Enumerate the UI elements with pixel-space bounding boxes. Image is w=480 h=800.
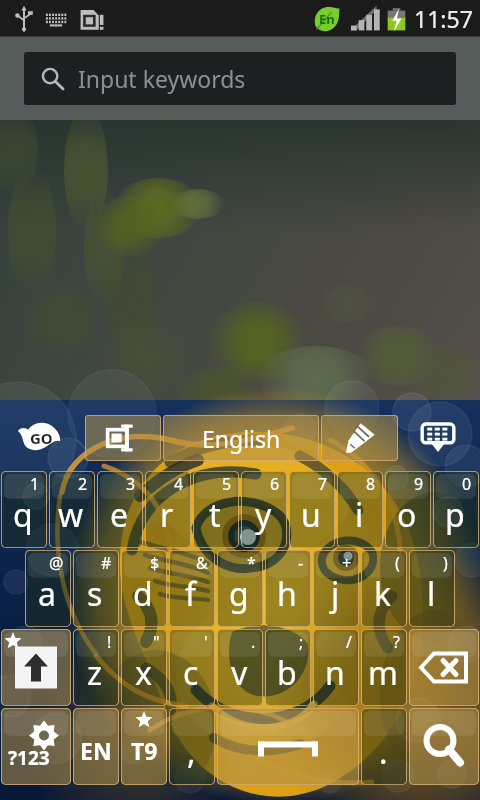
staticText: En xyxy=(319,10,335,28)
button[interactable]: Input keywords xyxy=(24,52,456,105)
button[interactable]: o xyxy=(385,471,431,548)
staticText: j xyxy=(331,572,340,616)
staticText: l xyxy=(427,572,436,616)
staticText: 3 xyxy=(126,473,136,495)
staticText: . xyxy=(251,631,256,653)
staticText: 6 xyxy=(270,473,280,495)
button[interactable]: l xyxy=(409,550,455,627)
button[interactable]: i xyxy=(337,471,383,548)
button[interactable]: h xyxy=(265,550,311,627)
staticText: p xyxy=(445,493,465,537)
staticText: - xyxy=(298,552,304,574)
button[interactable]: T9 xyxy=(121,708,167,785)
button[interactable]: q xyxy=(1,471,47,548)
button[interactable]: r xyxy=(145,471,191,548)
button[interactable]: n xyxy=(313,629,359,706)
staticText: # xyxy=(101,552,112,574)
staticText: 0 xyxy=(462,473,472,495)
staticText: f xyxy=(185,572,197,616)
button[interactable]: , xyxy=(169,708,215,785)
button[interactable]: g xyxy=(217,550,263,627)
button[interactable]: Hide keyboard xyxy=(414,414,462,460)
button[interactable]: x xyxy=(121,629,167,706)
button[interactable]: t xyxy=(193,471,239,548)
staticText: k xyxy=(374,572,392,616)
button[interactable]: k xyxy=(361,550,407,627)
staticText: v xyxy=(231,651,248,695)
staticText: s xyxy=(87,572,103,616)
staticText: 4 xyxy=(174,473,184,495)
staticText: i xyxy=(355,493,364,537)
staticText: & xyxy=(196,552,208,574)
staticText: ?123 xyxy=(8,745,50,771)
staticText: Input keywords xyxy=(78,63,246,94)
staticText: h xyxy=(277,572,297,616)
staticText: $ xyxy=(150,552,160,574)
staticText: ? xyxy=(393,631,400,653)
button[interactable]: Switch input layout xyxy=(85,415,161,461)
staticText: u xyxy=(301,493,321,537)
staticText: " xyxy=(153,631,160,653)
button[interactable]: GO Keyboard menu xyxy=(17,422,61,452)
staticText: ; xyxy=(299,631,304,653)
staticText: @ xyxy=(49,552,64,574)
staticText: e xyxy=(110,493,129,537)
staticText: T9 xyxy=(131,735,158,766)
staticText: ) xyxy=(443,552,448,574)
staticText: w xyxy=(58,493,84,537)
button[interactable]: w xyxy=(49,471,95,548)
button[interactable]: Handwriting xyxy=(321,415,398,461)
staticText: 7 xyxy=(318,473,328,495)
button[interactable]: b xyxy=(265,629,311,706)
button[interactable]: EN xyxy=(73,708,119,785)
staticText: r xyxy=(160,493,174,537)
button[interactable]: s xyxy=(73,550,119,627)
staticText: y xyxy=(255,493,272,537)
staticText: 5 xyxy=(222,473,232,495)
staticText: o xyxy=(397,493,417,537)
staticText: 2 xyxy=(78,473,88,495)
staticText: , xyxy=(187,730,196,774)
staticText: x xyxy=(135,651,152,695)
staticText: + xyxy=(342,552,352,574)
staticText: ! xyxy=(107,631,112,653)
button[interactable]: Delete xyxy=(409,629,479,706)
button[interactable]: j xyxy=(313,550,359,627)
staticText: n xyxy=(325,651,345,695)
staticText: * xyxy=(247,552,256,574)
button[interactable]: m xyxy=(361,629,407,706)
button[interactable]: e xyxy=(97,471,143,548)
button[interactable]: English xyxy=(163,415,319,461)
staticText: z xyxy=(87,651,103,695)
button[interactable]: Space xyxy=(217,708,359,785)
button[interactable]: Symbols xyxy=(1,708,71,785)
staticText: d xyxy=(133,572,153,616)
staticText: EN xyxy=(80,735,112,766)
staticText: GO xyxy=(30,428,53,448)
button[interactable]: Shift xyxy=(1,629,71,706)
button[interactable]: f xyxy=(169,550,215,627)
staticText: c xyxy=(183,651,199,695)
button[interactable]: c xyxy=(169,629,215,706)
button[interactable]: z xyxy=(73,629,119,706)
button[interactable]: . xyxy=(361,708,407,785)
button[interactable]: u xyxy=(289,471,335,548)
staticText: ( xyxy=(395,552,400,574)
staticText: m xyxy=(368,651,398,695)
button[interactable]: v xyxy=(217,629,263,706)
button[interactable]: d xyxy=(121,550,167,627)
staticText: / xyxy=(346,631,352,653)
button[interactable]: a xyxy=(25,550,71,627)
button[interactable]: y xyxy=(241,471,287,548)
staticText: q xyxy=(13,493,33,537)
staticText: a xyxy=(38,572,56,616)
staticText: g xyxy=(229,572,249,616)
staticText: 11:57 xyxy=(414,3,473,34)
staticText: 8 xyxy=(366,473,376,495)
button[interactable]: p xyxy=(433,471,479,548)
staticText: t xyxy=(209,493,221,537)
staticText: English xyxy=(202,423,281,454)
staticText: 1 xyxy=(30,473,40,495)
button[interactable]: Search xyxy=(409,708,479,785)
staticText: b xyxy=(277,651,297,695)
